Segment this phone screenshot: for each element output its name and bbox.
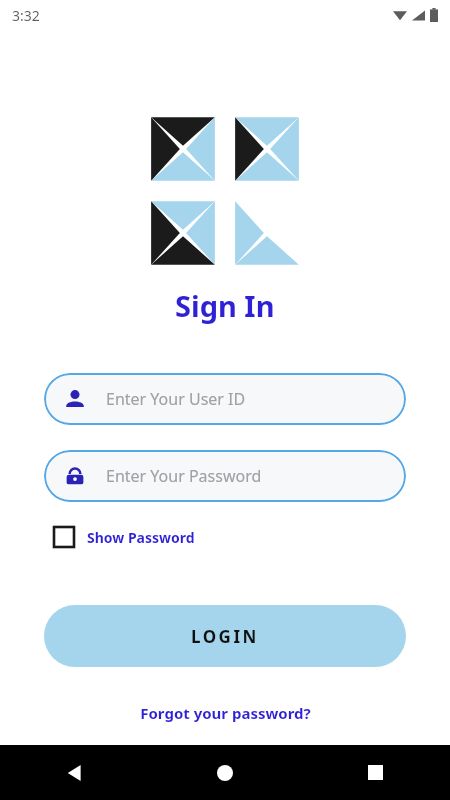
- button[interactable]: LOGIN: [44, 605, 406, 667]
- button[interactable]: Back: [0, 745, 150, 800]
- staticText: Forgot your password?: [140, 703, 311, 723]
- button[interactable]: Home: [150, 745, 300, 800]
- button[interactable]: Recent apps: [300, 745, 450, 800]
- button[interactable]: Show Password: [44, 523, 205, 551]
- other: Password: [64, 465, 86, 487]
- button[interactable]: Forgot your password?: [128, 699, 323, 727]
- staticText: Show Password: [87, 528, 195, 547]
- staticText: LOGIN: [191, 625, 259, 648]
- button[interactable]: User ID: [44, 373, 406, 425]
- staticText: Sign In: [175, 286, 275, 325]
- other: User ID: [64, 388, 86, 410]
- staticText: Enter Your User ID: [106, 388, 246, 410]
- button[interactable]: Password: [44, 450, 406, 502]
- staticText: Enter Your Password: [106, 465, 262, 487]
- staticText: 3:32: [12, 6, 40, 25]
